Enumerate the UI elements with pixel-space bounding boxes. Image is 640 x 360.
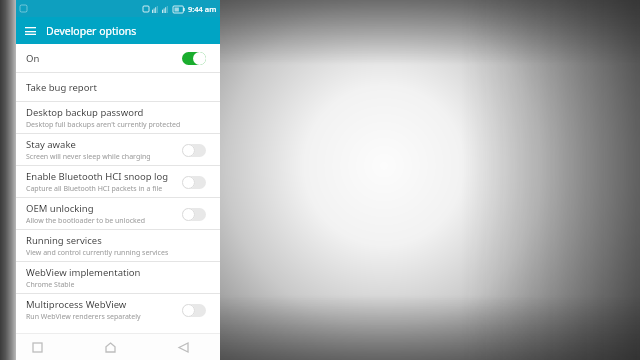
- staticText: Chrome Stable: [26, 280, 75, 290]
- staticText: Enable Bluetooth HCI snoop log: [26, 170, 169, 183]
- staticText: On: [26, 52, 40, 65]
- button[interactable]: Stay awake: [0, 134, 220, 165]
- button[interactable]: Running services: [0, 230, 220, 261]
- button[interactable]: OEM unlocking: [0, 198, 220, 229]
- staticText: Desktop backup password: [26, 106, 144, 119]
- button[interactable]: Toggle off: [182, 175, 208, 189]
- staticText: Multiprocess WebView: [26, 298, 127, 311]
- button[interactable]: Toggle on: [182, 51, 208, 65]
- staticText: Run WebView renderers separately: [26, 312, 141, 322]
- staticText: Developer options: [46, 24, 137, 38]
- button[interactable]: Multiprocess WebView: [0, 294, 220, 325]
- staticText: Stay awake: [26, 138, 76, 151]
- button[interactable]: Toggle off: [182, 143, 208, 157]
- staticText: 9:44 am: [188, 4, 217, 14]
- button[interactable]: Desktop backup password: [0, 102, 220, 133]
- staticText: View and control currently running servi…: [26, 248, 169, 258]
- button[interactable]: Enable Bluetooth HCI snoop log: [0, 166, 220, 197]
- button[interactable]: Back: [147, 334, 220, 360]
- staticText: Allow the bootloader to be unlocked: [26, 216, 146, 226]
- staticText: Take bug report: [26, 81, 97, 94]
- button[interactable]: Recent apps: [0, 334, 74, 360]
- staticText: WebView implementation: [26, 266, 141, 279]
- button[interactable]: Open navigation menu: [20, 21, 40, 41]
- staticText: Screen will never sleep while charging: [26, 152, 151, 162]
- button[interactable]: WebView implementation: [0, 262, 220, 293]
- button[interactable]: Toggle off: [182, 207, 208, 221]
- staticText: Desktop full backups aren't currently pr…: [26, 120, 181, 130]
- staticText: Running services: [26, 234, 102, 247]
- button[interactable]: On: [0, 44, 220, 72]
- staticText: Capture all Bluetooth HCI packets in a f…: [26, 184, 163, 194]
- button[interactable]: Toggle off: [182, 303, 208, 317]
- staticText: OEM unlocking: [26, 202, 94, 215]
- button[interactable]: Home: [74, 334, 147, 360]
- button[interactable]: Take bug report: [0, 73, 220, 101]
